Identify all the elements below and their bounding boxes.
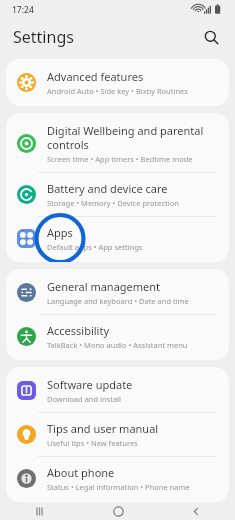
button[interactable]: Search settings <box>198 24 224 50</box>
button[interactable]: General management <box>6 271 229 314</box>
button[interactable]: Software update <box>6 369 229 412</box>
staticText: Tips and user manual <box>47 421 159 436</box>
button[interactable]: Battery and device care <box>6 173 229 216</box>
staticText: 17:24 <box>12 4 34 16</box>
staticText: TalkBack • Mono audio • Assistant menu <box>47 340 188 350</box>
button[interactable]: Advanced features <box>6 61 229 104</box>
staticText: General management <box>47 279 161 294</box>
staticText: About phone <box>47 465 115 480</box>
button[interactable]: Apps <box>6 217 229 260</box>
staticText: Screen time • App timers • Bedtime mode <box>47 154 193 164</box>
staticText: Accessibility <box>47 323 110 338</box>
staticText: Default apps • App settings <box>47 242 143 252</box>
staticText: Android Auto • Side key • Bixby Routines <box>47 86 188 96</box>
staticText: Battery and device care <box>47 181 168 196</box>
button[interactable]: Back <box>157 502 235 520</box>
staticText: Software update <box>47 377 133 392</box>
button[interactable]: About phone <box>6 457 229 500</box>
staticText: Apps <box>47 225 73 240</box>
button[interactable]: Home <box>79 502 157 520</box>
staticText: Status • Legal information • Phone name <box>47 482 190 492</box>
staticText: Digital Wellbeing and parental controls <box>47 123 204 152</box>
staticText: Advanced features <box>47 69 144 84</box>
button[interactable]: Accessibility <box>6 315 229 358</box>
button[interactable]: Recent apps <box>0 502 79 520</box>
staticText: Language and keyboard • Date and time <box>47 296 189 306</box>
button[interactable]: Digital Wellbeing and parental controls <box>6 115 229 172</box>
button[interactable]: Tips and user manual <box>6 413 229 456</box>
staticText: Storage • Memory • Device protection <box>47 198 179 208</box>
staticText: Download and install <box>47 394 121 404</box>
staticText: Settings <box>13 26 74 48</box>
staticText: Useful tips • New features <box>47 438 138 448</box>
